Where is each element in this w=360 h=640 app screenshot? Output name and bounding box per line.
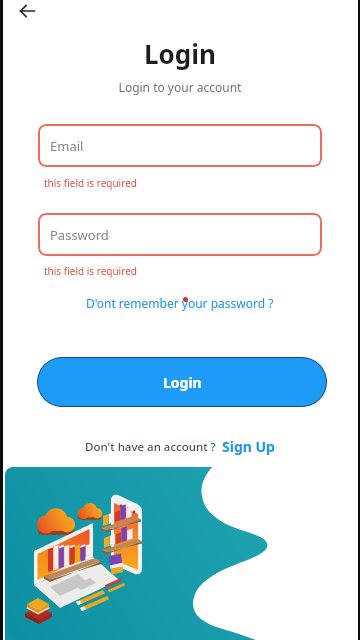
staticText: Login to your account (0, 79, 360, 95)
staticText: Login (163, 373, 202, 392)
staticText: Don't have an account ? (85, 439, 222, 455)
staticText: this field is required (44, 176, 137, 190)
staticText: D'ont remember your password ? (86, 295, 274, 311)
staticText: this field is required (44, 264, 137, 278)
button[interactable]: Email (38, 124, 322, 167)
staticText: Login (0, 36, 360, 71)
button[interactable]: Password (38, 213, 322, 256)
button[interactable]: D'ont remember your password ? (86, 295, 274, 311)
staticText: Sign Up (222, 437, 275, 456)
staticText: Email (50, 137, 84, 155)
button[interactable] (14, 0, 40, 22)
staticText: Password (50, 226, 109, 244)
button[interactable]: Login (37, 357, 327, 407)
button[interactable]: Sign Up (222, 437, 275, 456)
